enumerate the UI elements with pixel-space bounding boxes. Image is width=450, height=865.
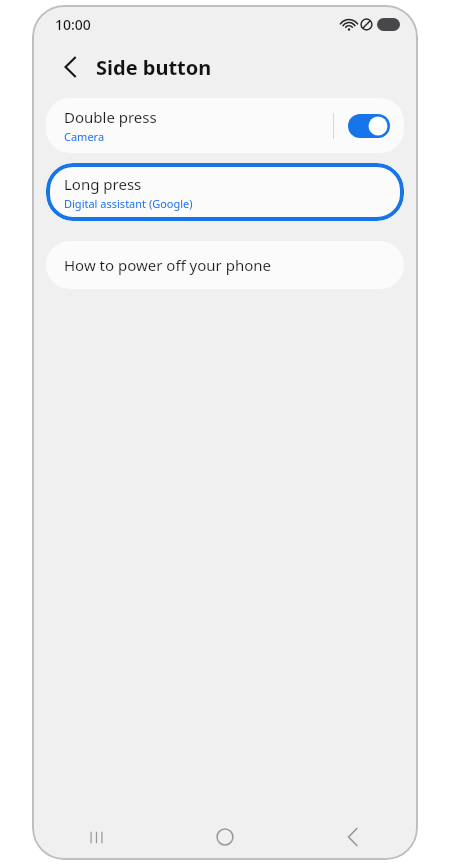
button[interactable]: Double press <box>46 98 404 153</box>
staticText: Long press <box>64 174 142 194</box>
staticText: Double press <box>64 107 157 127</box>
button[interactable]: Recent apps <box>32 814 160 860</box>
staticText: How to power off your phone <box>64 255 272 275</box>
button[interactable]: Home <box>160 814 289 860</box>
button[interactable]: How to power off your phone <box>46 241 404 289</box>
staticText: Side button <box>96 54 212 81</box>
button[interactable]: Long press <box>46 163 404 221</box>
button[interactable]: Back <box>54 50 88 84</box>
staticText: Camera <box>64 129 105 144</box>
staticText: Digital assistant (Google) <box>64 196 193 211</box>
button[interactable]: Double press toggle, on <box>348 114 390 138</box>
button[interactable]: Back <box>289 814 418 860</box>
staticText: 10:00 <box>55 15 91 34</box>
